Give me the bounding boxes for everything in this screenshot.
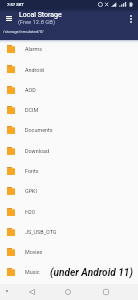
staticText: DCIM	[25, 107, 39, 113]
button[interactable]: Navigation menu	[0, 10, 18, 34]
staticText: Movies	[25, 249, 43, 255]
button[interactable]	[0, 161, 138, 181]
staticText: Android	[25, 67, 44, 73]
button[interactable]	[0, 39, 138, 59]
staticText: AOD	[25, 87, 36, 93]
button[interactable]	[0, 242, 138, 262]
button[interactable]	[0, 100, 138, 120]
button[interactable]	[0, 59, 138, 79]
button[interactable]	[0, 201, 138, 221]
button[interactable]: Recent apps	[99, 285, 113, 299]
button[interactable]: More options	[125, 13, 137, 25]
staticText: Alarms	[25, 46, 43, 52]
staticText: H20	[25, 209, 35, 215]
staticText: /storage/emulated/0/	[3, 29, 44, 34]
button[interactable]	[0, 222, 138, 242]
staticText: JS_USB_OTG	[25, 229, 57, 235]
button[interactable]: Switch keyboard	[1, 285, 13, 297]
button[interactable]	[0, 79, 138, 99]
button[interactable]	[0, 262, 138, 282]
staticText: Download	[25, 148, 49, 154]
staticText: Music	[25, 269, 40, 275]
button[interactable]	[0, 120, 138, 140]
staticText: 7:57 SKT	[7, 2, 24, 7]
staticText: (Free 12.8 GB)	[18, 19, 55, 26]
staticText: Documents	[25, 127, 53, 133]
button[interactable]	[0, 140, 138, 160]
button[interactable]: Home	[61, 285, 75, 299]
staticText: Local Storage	[19, 11, 62, 19]
button[interactable]	[0, 181, 138, 201]
staticText: Fonts	[25, 168, 39, 174]
button[interactable]: Back	[25, 285, 39, 299]
staticText: (under Android 11)	[50, 267, 133, 279]
staticText: GPKI	[25, 188, 37, 194]
